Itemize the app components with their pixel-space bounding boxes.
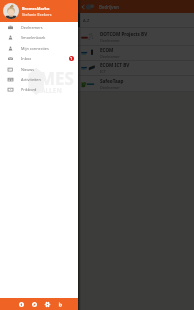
staticText: 1 [70, 56, 73, 61]
staticText: ICT [100, 69, 106, 74]
staticText: Mijn connecties [21, 46, 49, 51]
button[interactable]: Activiteiten [0, 74, 78, 84]
staticText: ECOM ICT BV [100, 62, 130, 68]
button[interactable]: ECOM [0, 45, 194, 60]
button[interactable]: A-Z [0, 13, 194, 27]
button[interactable]: Mijn connecties [0, 43, 78, 53]
button[interactable]: Facebook [16, 299, 27, 310]
staticText: Deelnemer [100, 38, 120, 43]
button[interactable]: Blog [55, 299, 66, 310]
staticText: Activiteiten [21, 77, 41, 82]
button[interactable]: ECOM ICT BV [0, 60, 194, 75]
button[interactable]: Deelnemers [0, 22, 78, 32]
button[interactable]: Settings [42, 299, 53, 310]
staticText: BromesMarko [22, 6, 50, 11]
button[interactable]: Inbox [0, 53, 78, 63]
button[interactable]: Nieuws [0, 64, 78, 74]
staticText: Deelnemer [100, 54, 120, 59]
staticText: SafeoTaap [100, 78, 124, 84]
staticText: Prikbord [21, 87, 37, 92]
staticText: MES [39, 67, 74, 90]
button[interactable]: Twitter [29, 299, 40, 310]
button[interactable]: SafeoTaap [0, 76, 194, 92]
staticText: Stefanie Beekers [22, 12, 52, 17]
button[interactable]: Prikbord [0, 84, 78, 94]
staticText: Inbox [21, 56, 32, 61]
button[interactable]: DOTCOM Projects BV [0, 28, 194, 46]
staticText: Deelnemer [100, 85, 120, 90]
staticText: A-Z [83, 18, 90, 23]
button[interactable]: BromesMarko [0, 0, 78, 22]
staticText: HALLEN [36, 86, 62, 95]
button[interactable]: Smoelenboek [0, 32, 78, 42]
button[interactable]: Back [79, 3, 86, 10]
staticText: ECOM [100, 47, 114, 53]
staticText: DOTCOM Projects BV [100, 31, 148, 37]
staticText: Smoelenboek [21, 35, 46, 40]
staticText: Bedrijven [99, 4, 119, 10]
staticText: Nieuws [21, 67, 35, 72]
staticText: Deelnemers [21, 25, 43, 30]
